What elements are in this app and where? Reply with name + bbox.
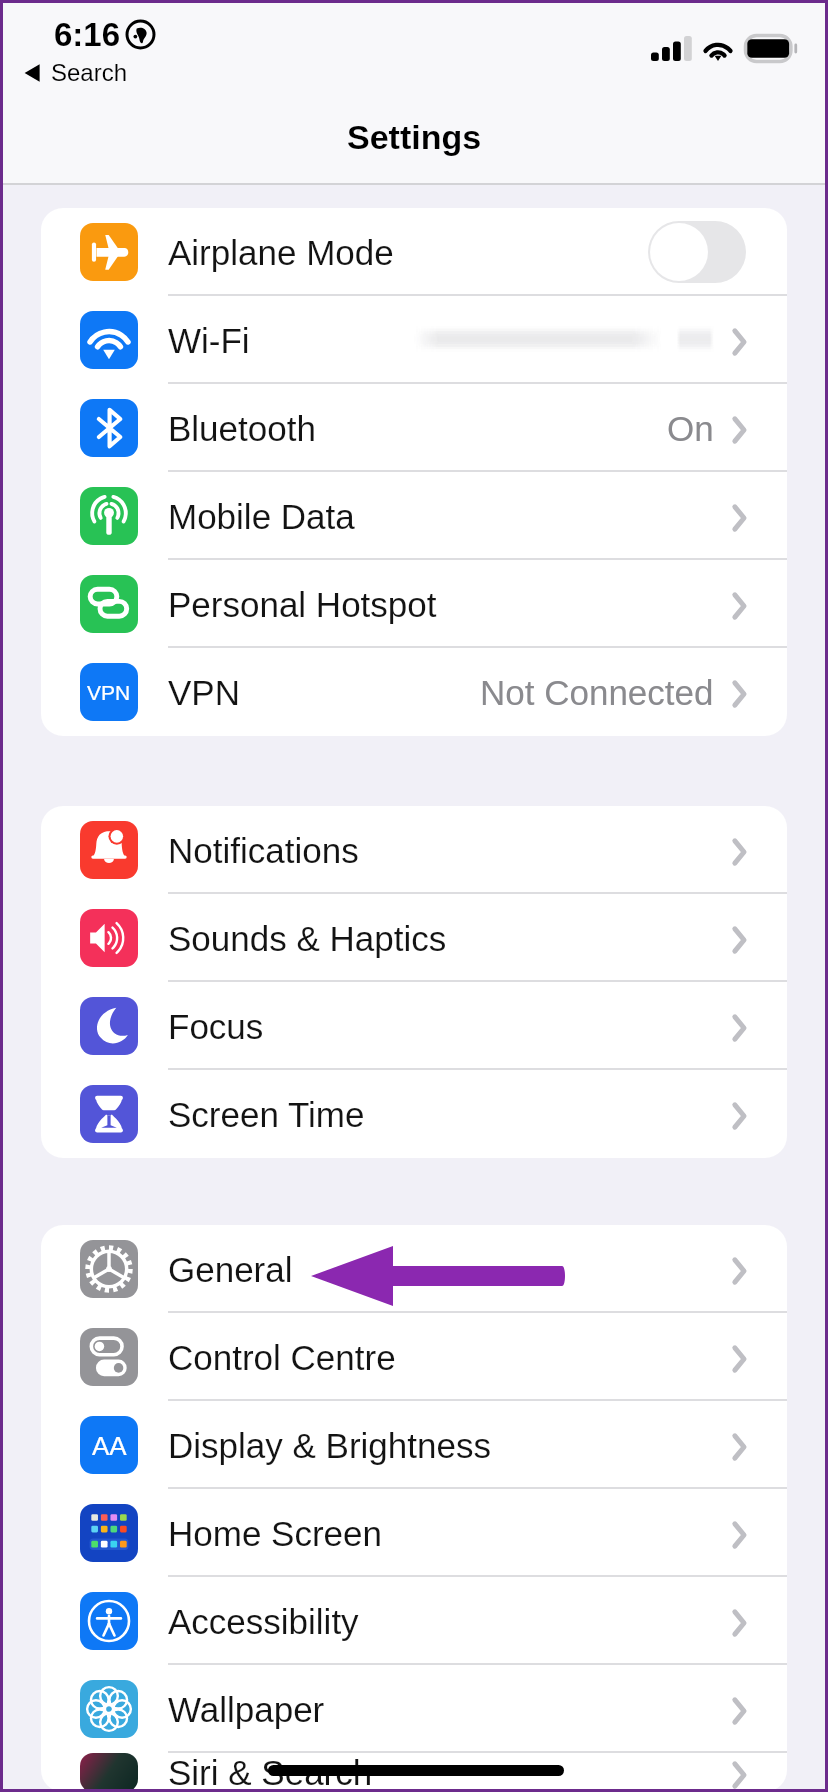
button[interactable]: Focus [41, 982, 787, 1070]
button[interactable]: Personal Hotspot [41, 560, 787, 648]
button[interactable]: AA [41, 1401, 787, 1489]
button[interactable]: Sounds & Haptics [41, 894, 787, 982]
button[interactable]: Notifications [41, 806, 787, 894]
button[interactable]: VPN [41, 648, 787, 736]
button[interactable]: Toggle Airplane Mode [648, 221, 746, 283]
button[interactable]: Wi-Fi [41, 296, 787, 384]
staticText: AA [92, 1431, 127, 1460]
button[interactable]: Mobile Data [41, 472, 787, 560]
staticText: Settings [347, 118, 482, 156]
button[interactable]: Wallpaper [41, 1665, 787, 1753]
button[interactable]: Search [22, 59, 128, 86]
button[interactable]: Screen Time [41, 1070, 787, 1158]
staticText: Mobile Data [168, 497, 355, 536]
staticText: Focus [168, 1007, 264, 1046]
staticText: Wi-Fi [168, 321, 250, 360]
button[interactable]: Airplane Mode [41, 208, 787, 296]
staticText: Control Centre [168, 1338, 396, 1377]
button[interactable]: Control Centre [41, 1313, 787, 1401]
staticText: Airplane Mode [168, 233, 394, 272]
button[interactable]: Siri & Search [41, 1753, 787, 1792]
staticText: Screen Time [168, 1095, 365, 1134]
staticText: VPN [87, 681, 131, 704]
staticText: Search [51, 59, 128, 86]
staticText: Siri & Search [168, 1753, 373, 1792]
staticText: Not Connected [480, 673, 714, 712]
staticText: 6:16 [54, 16, 121, 53]
staticText: Sounds & Haptics [168, 919, 447, 958]
staticText: Accessibility [168, 1602, 359, 1641]
button[interactable]: General [41, 1225, 787, 1313]
staticText: Notifications [168, 831, 359, 870]
button[interactable]: Accessibility [41, 1577, 787, 1665]
staticText: Wallpaper [168, 1690, 325, 1729]
staticText: On [667, 409, 714, 448]
staticText: Home Screen [168, 1514, 382, 1553]
staticText: Display & Brightness [168, 1426, 491, 1465]
staticText: Bluetooth [168, 409, 316, 448]
staticText: Personal Hotspot [168, 585, 437, 624]
staticText: VPN [168, 673, 240, 712]
button[interactable]: Bluetooth [41, 384, 787, 472]
staticText: General [168, 1250, 293, 1289]
button[interactable]: Home Screen [41, 1489, 787, 1577]
